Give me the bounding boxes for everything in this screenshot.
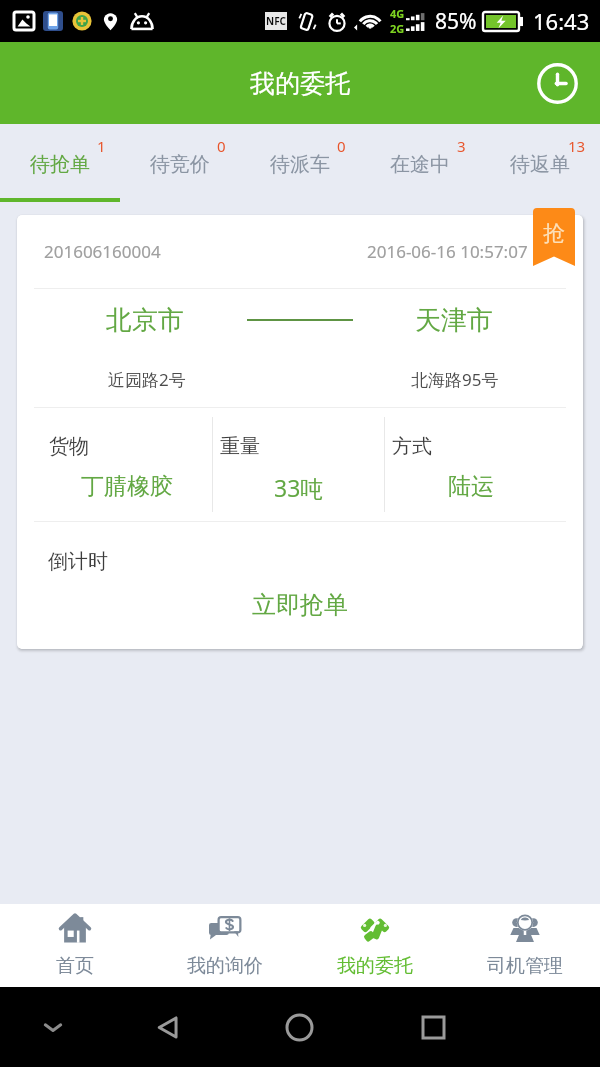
button[interactable]: 待派车 [240, 124, 360, 202]
staticText: 司机管理 [487, 954, 563, 978]
button[interactable]: 我的委托 [300, 904, 450, 987]
button[interactable]: 司机管理 [450, 904, 600, 987]
staticText: 33吨 [274, 472, 324, 503]
staticText: 待竞价 [150, 152, 210, 177]
button[interactable]: 首页 [0, 904, 150, 987]
button[interactable]: History [533, 59, 581, 107]
button[interactable]: 待抢单 [0, 124, 120, 202]
staticText: 抢 [543, 220, 565, 248]
staticText: 85% [435, 7, 477, 36]
staticText: 重量 [220, 434, 260, 459]
staticText: 倒计时 [48, 549, 108, 574]
staticText: 货物 [49, 434, 89, 459]
staticText: 待返单 [510, 152, 570, 177]
button[interactable]: 立即抢单 [230, 589, 370, 621]
staticText: 我的委托 [337, 954, 413, 978]
staticText: NFC [266, 14, 287, 28]
button[interactable]: 待返单 [480, 124, 600, 202]
button[interactable]: 待竞价 [120, 124, 240, 202]
button[interactable]: 在途中 [360, 124, 480, 202]
staticText: 北海路95号 [411, 368, 499, 391]
staticText: 我的询价 [187, 954, 263, 978]
staticText: 4G [390, 6, 405, 21]
staticText: 首页 [56, 954, 94, 978]
staticText: 2016-06-16 10:57:07 [367, 240, 528, 263]
staticText: 陆运 [448, 472, 494, 501]
staticText: 0 [337, 136, 346, 156]
staticText: 3 [457, 136, 466, 156]
staticText: 13 [568, 136, 586, 156]
staticText: 1 [97, 136, 106, 156]
staticText: 立即抢单 [252, 590, 348, 620]
staticText: 2G [390, 21, 405, 36]
staticText: 201606160004 [44, 240, 161, 263]
button[interactable]: 我的询价 [150, 904, 300, 987]
staticText: 0 [217, 136, 226, 156]
staticText: 我的委托 [250, 68, 350, 99]
staticText: 待抢单 [30, 152, 90, 177]
staticText: 待派车 [270, 152, 330, 177]
staticText: 方式 [392, 434, 432, 459]
staticText: 天津市 [415, 304, 493, 337]
staticText: 近园路2号 [108, 368, 186, 391]
staticText: 16:43 [533, 6, 590, 36]
staticText: 北京市 [106, 304, 184, 337]
button[interactable]: 201606160004 [17, 215, 583, 649]
staticText: 在途中 [390, 152, 450, 177]
staticText: 丁腈橡胶 [81, 472, 173, 501]
